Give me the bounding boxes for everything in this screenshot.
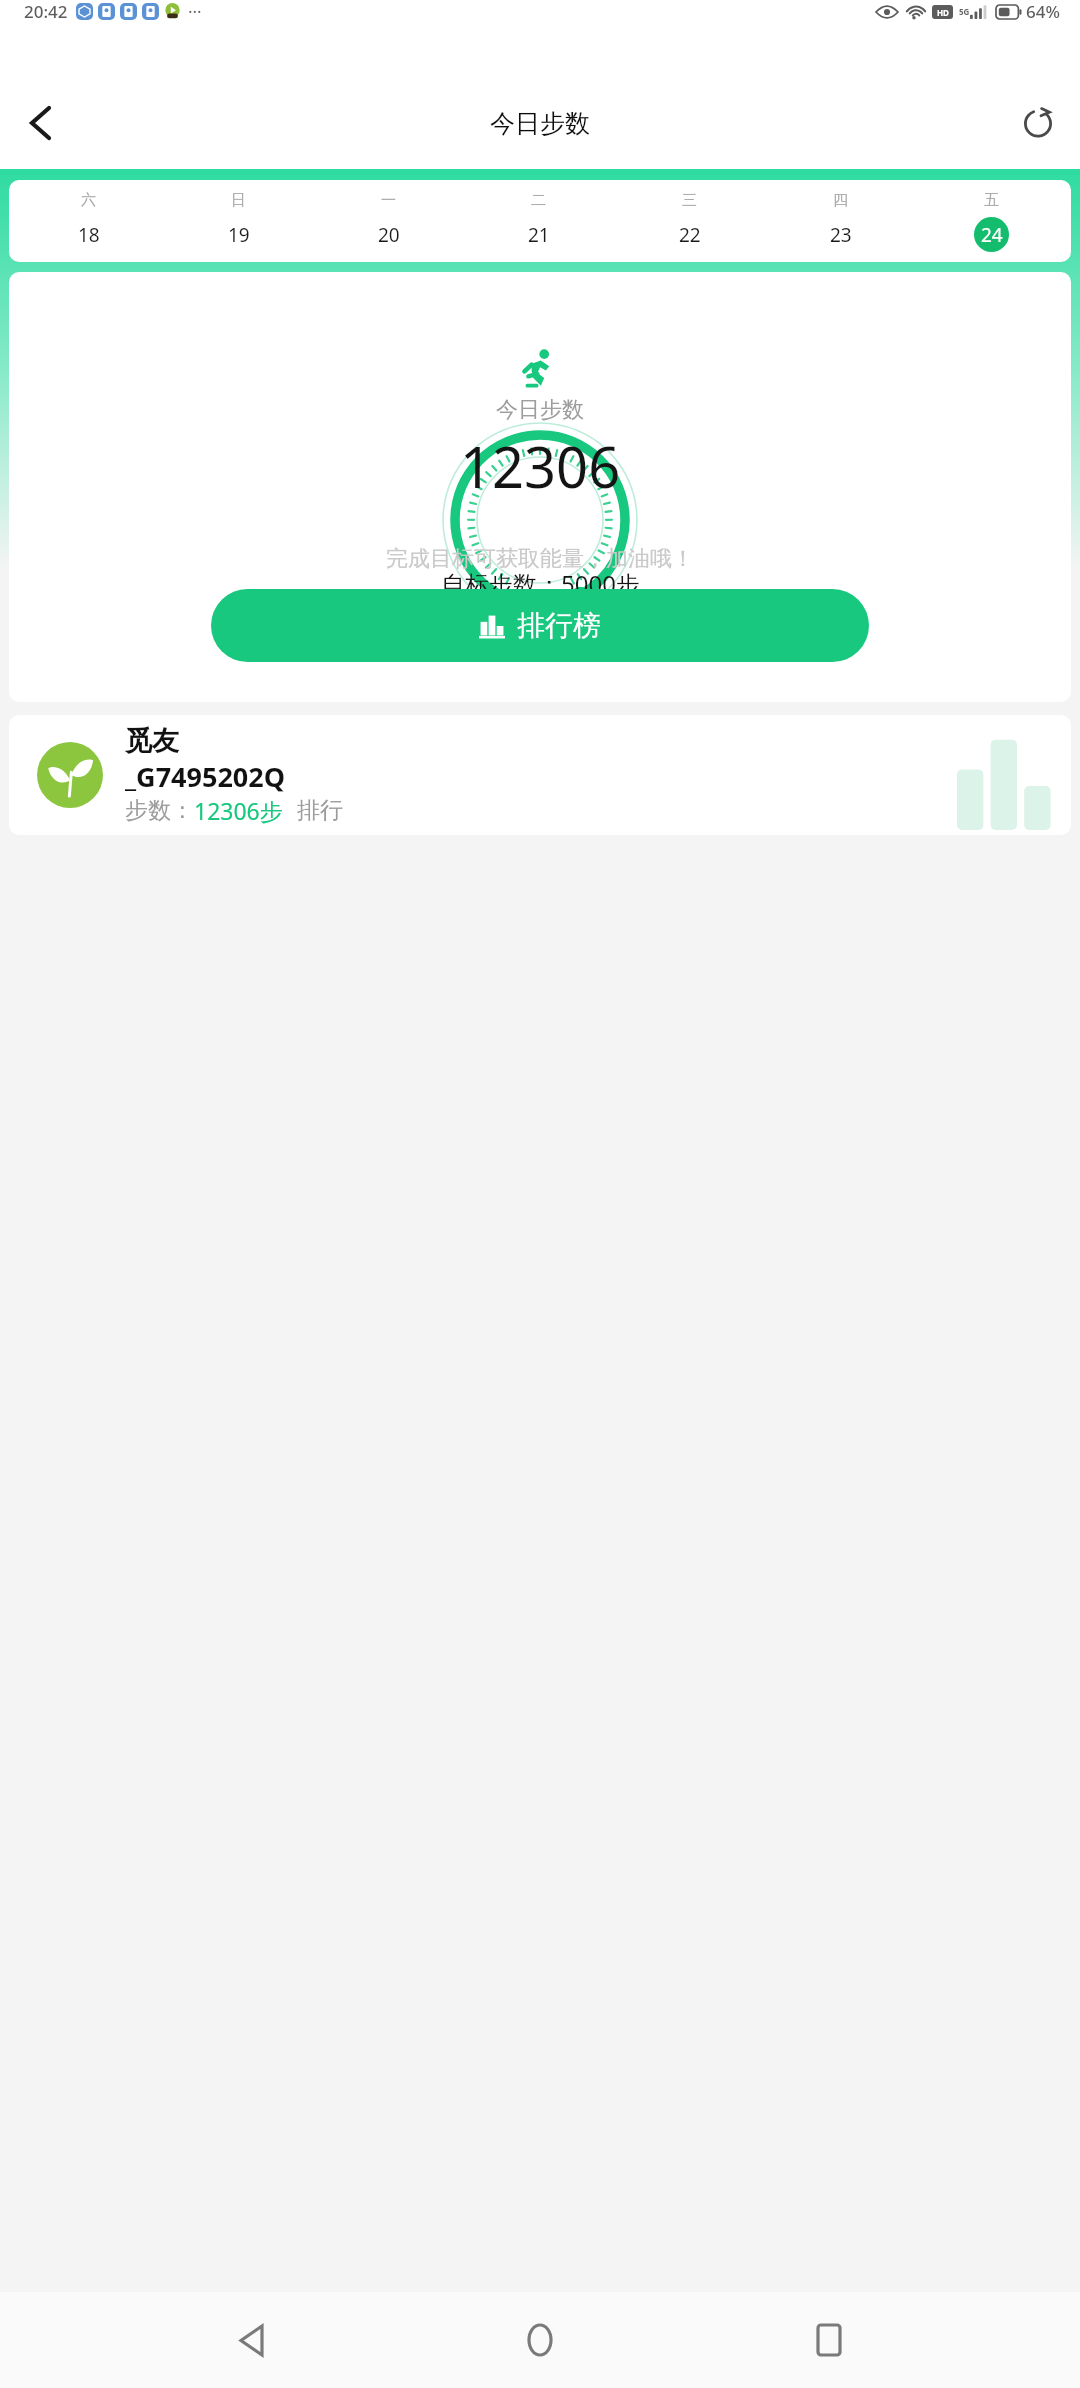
staticText: 12306 <box>460 428 621 504</box>
staticText: 20:42 <box>24 0 68 23</box>
staticText: 步数： <box>125 796 194 825</box>
button[interactable]: 20 <box>371 217 406 252</box>
staticText: 完成目标可获取能量，加油哦！ <box>386 545 694 573</box>
staticText: 觅友 <box>125 724 179 758</box>
button[interactable]: Home <box>502 2302 578 2378</box>
button[interactable]: Recents <box>791 2302 867 2378</box>
staticText: 20 <box>378 222 400 248</box>
staticText: _G7495202Q <box>125 758 286 795</box>
staticText: 今日步数 <box>490 108 590 139</box>
staticText: 22 <box>679 222 701 248</box>
button[interactable]: 觅友 <box>9 715 1071 835</box>
staticText: ··· <box>188 0 202 23</box>
button[interactable]: Back <box>8 91 72 155</box>
button[interactable]: 19 <box>221 217 256 252</box>
button[interactable]: 21 <box>521 217 556 252</box>
staticText: HD <box>937 7 949 18</box>
staticText: 24 <box>981 222 1003 248</box>
staticText: 二 <box>531 191 546 210</box>
staticText: 5G <box>959 6 970 17</box>
staticText: 自标步数：5000步 <box>441 567 640 600</box>
button[interactable]: Share <box>1006 91 1070 155</box>
button[interactable]: 18 <box>71 217 106 252</box>
staticText: 六 <box>81 191 96 210</box>
staticText: 四 <box>833 191 848 210</box>
button[interactable]: 排行榜 <box>211 589 869 662</box>
staticText: 64% <box>1026 0 1060 23</box>
staticText: 21 <box>528 222 550 248</box>
staticText: 19 <box>228 222 250 248</box>
staticText: 日 <box>231 191 246 210</box>
staticText: 三 <box>682 191 697 210</box>
button[interactable]: 24 <box>974 217 1009 252</box>
button[interactable]: Back <box>213 2302 289 2378</box>
button[interactable]: 22 <box>672 217 707 252</box>
staticText: 排行 <box>297 796 343 825</box>
staticText: 12306步 <box>194 795 283 826</box>
staticText: 排行榜 <box>517 608 601 643</box>
staticText: 18 <box>78 222 100 248</box>
staticText: 今日步数 <box>496 396 584 424</box>
staticText: 23 <box>830 222 852 248</box>
staticText: 一 <box>381 191 396 210</box>
staticText: 五 <box>984 191 999 210</box>
button[interactable]: 23 <box>823 217 858 252</box>
